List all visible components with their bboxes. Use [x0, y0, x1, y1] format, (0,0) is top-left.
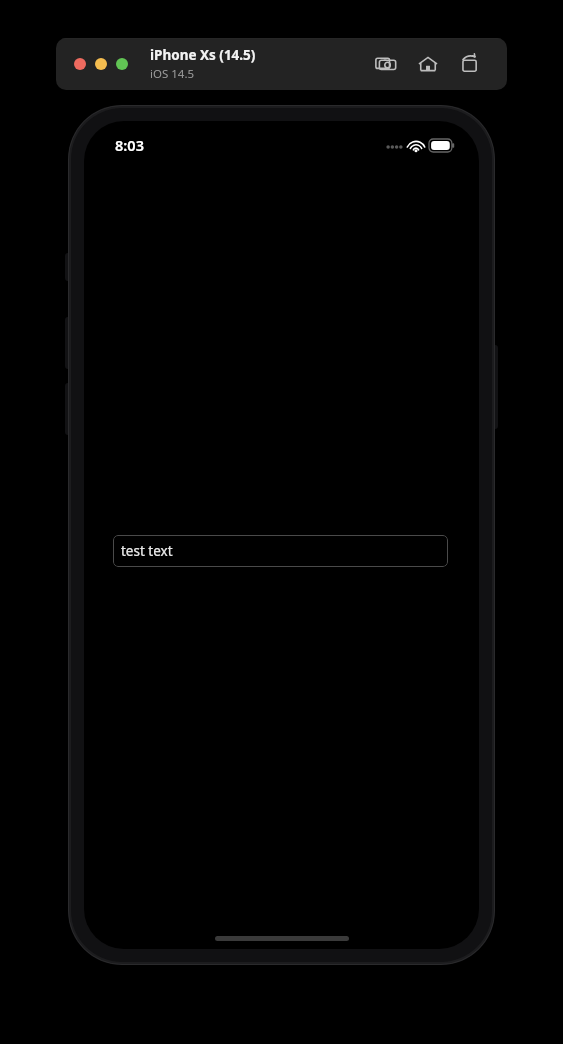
staticText: iPhone Xs (14.5) [150, 46, 256, 64]
button[interactable]: Home [415, 51, 441, 77]
button[interactable]: Minimize [95, 58, 107, 70]
staticText: iOS 14.5 [150, 66, 195, 82]
button[interactable]: Rotate [457, 51, 483, 77]
staticText: 8:03 [115, 135, 144, 155]
button[interactable]: Close [74, 58, 86, 70]
button[interactable]: Take screenshot [373, 51, 399, 77]
staticText: test text [121, 542, 173, 560]
button[interactable]: test text [113, 535, 448, 567]
button[interactable]: Zoom [116, 58, 128, 70]
